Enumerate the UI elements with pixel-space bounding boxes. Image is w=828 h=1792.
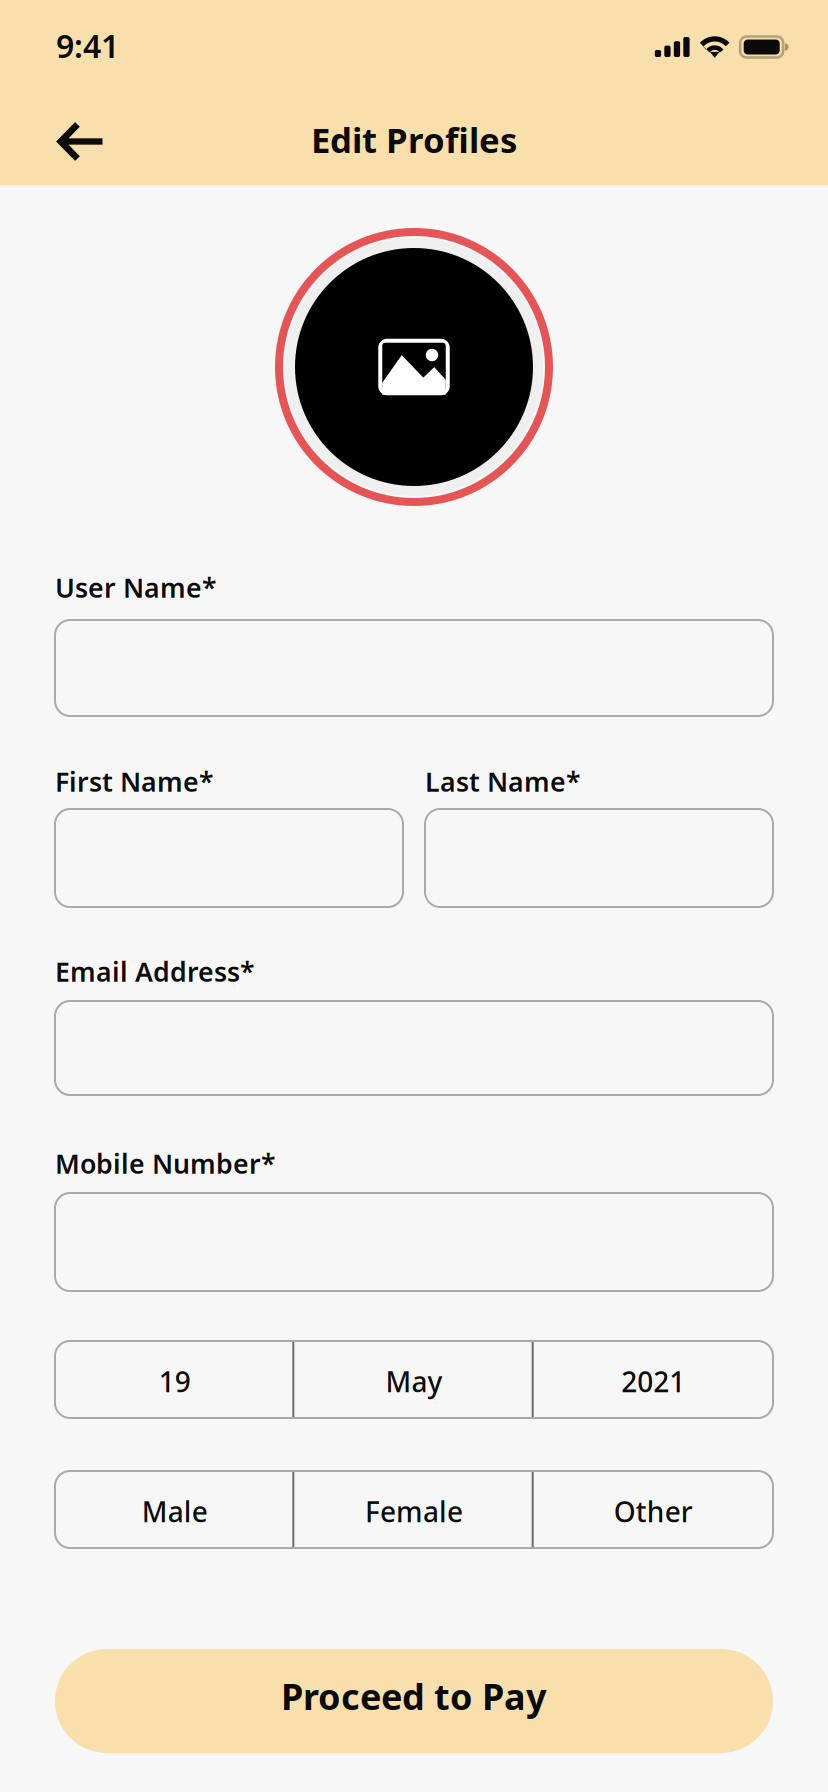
staticText: User Name* (55, 570, 217, 605)
button[interactable]: Other (534, 1471, 773, 1548)
button[interactable]: Male (55, 1471, 294, 1548)
button[interactable]: Email Address* (55, 1001, 773, 1095)
staticText: Proceed to Pay (281, 1672, 547, 1720)
staticText: 9:41 (56, 24, 119, 67)
staticText: Edit Profiles (311, 116, 517, 162)
staticText: Email Address* (55, 954, 255, 989)
staticText: Mobile Number* (55, 1146, 276, 1181)
button[interactable]: 19 (55, 1341, 294, 1418)
staticText: Last Name* (425, 764, 581, 799)
button[interactable]: Change profile photo (272, 225, 556, 509)
staticText: Female (365, 1493, 463, 1530)
button[interactable]: May (294, 1341, 534, 1418)
button[interactable]: Female (294, 1471, 534, 1548)
button[interactable]: Back (36, 101, 122, 177)
button[interactable]: First Name* (55, 809, 403, 907)
staticText: First Name* (55, 764, 214, 799)
button[interactable]: Last Name* (425, 809, 773, 907)
staticText: Male (142, 1493, 208, 1530)
button[interactable]: Proceed to Pay (55, 1649, 773, 1753)
staticText: May (385, 1363, 442, 1400)
staticText: 2021 (621, 1363, 685, 1400)
button[interactable]: User Name* (55, 620, 773, 716)
staticText: Other (614, 1493, 693, 1530)
button[interactable]: 2021 (534, 1341, 773, 1418)
staticText: 19 (159, 1363, 191, 1400)
button[interactable]: Mobile Number* (55, 1193, 773, 1291)
